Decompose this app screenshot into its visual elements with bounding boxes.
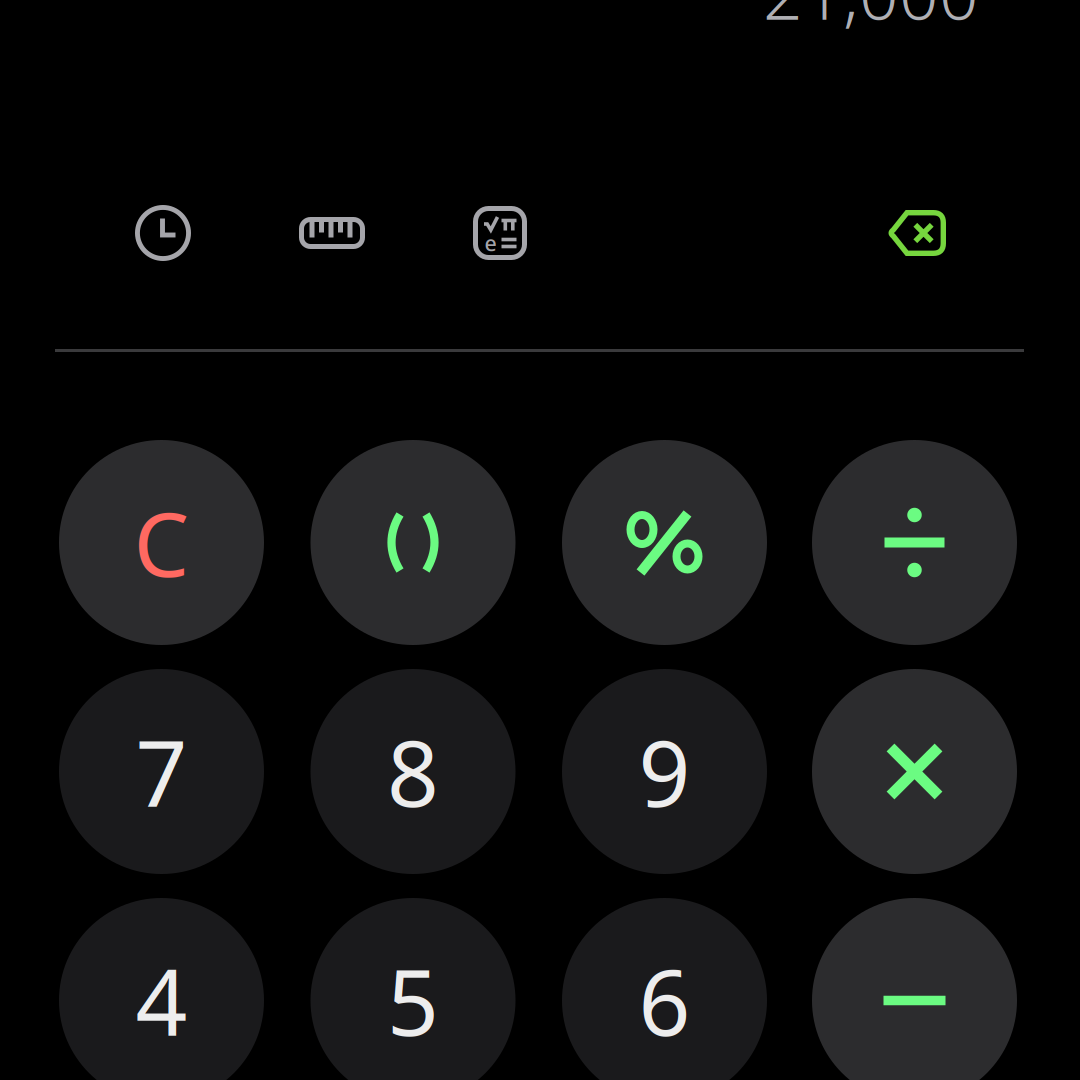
button[interactable]: Percent bbox=[562, 440, 767, 645]
staticText: e bbox=[484, 229, 496, 257]
staticText: 4 bbox=[135, 940, 187, 1061]
button[interactable]: 8 bbox=[310, 669, 515, 874]
staticText: 6 bbox=[638, 940, 690, 1061]
staticText: 5 bbox=[387, 940, 439, 1061]
button[interactable]: Parentheses bbox=[310, 440, 515, 645]
button[interactable]: 5 bbox=[310, 898, 515, 1080]
button[interactable]: 7 bbox=[59, 669, 264, 874]
button[interactable]: Convert bbox=[299, 217, 365, 249]
staticText: 9 bbox=[638, 711, 690, 832]
button[interactable]: Multiply bbox=[812, 669, 1017, 874]
button[interactable]: History bbox=[135, 205, 191, 261]
staticText: 21,000 bbox=[763, 0, 979, 39]
button[interactable]: C bbox=[59, 440, 264, 645]
staticText: 8 bbox=[387, 711, 439, 832]
button[interactable]: 6 bbox=[562, 898, 767, 1080]
staticText: 7 bbox=[135, 711, 187, 832]
button[interactable]: Delete bbox=[888, 210, 946, 256]
staticText: C bbox=[133, 484, 189, 601]
button[interactable]: Divide bbox=[812, 440, 1017, 645]
button[interactable]: Scientific bbox=[473, 206, 527, 260]
button[interactable]: 4 bbox=[59, 898, 264, 1080]
button[interactable]: 9 bbox=[562, 669, 767, 874]
button[interactable]: Subtract bbox=[812, 898, 1017, 1080]
